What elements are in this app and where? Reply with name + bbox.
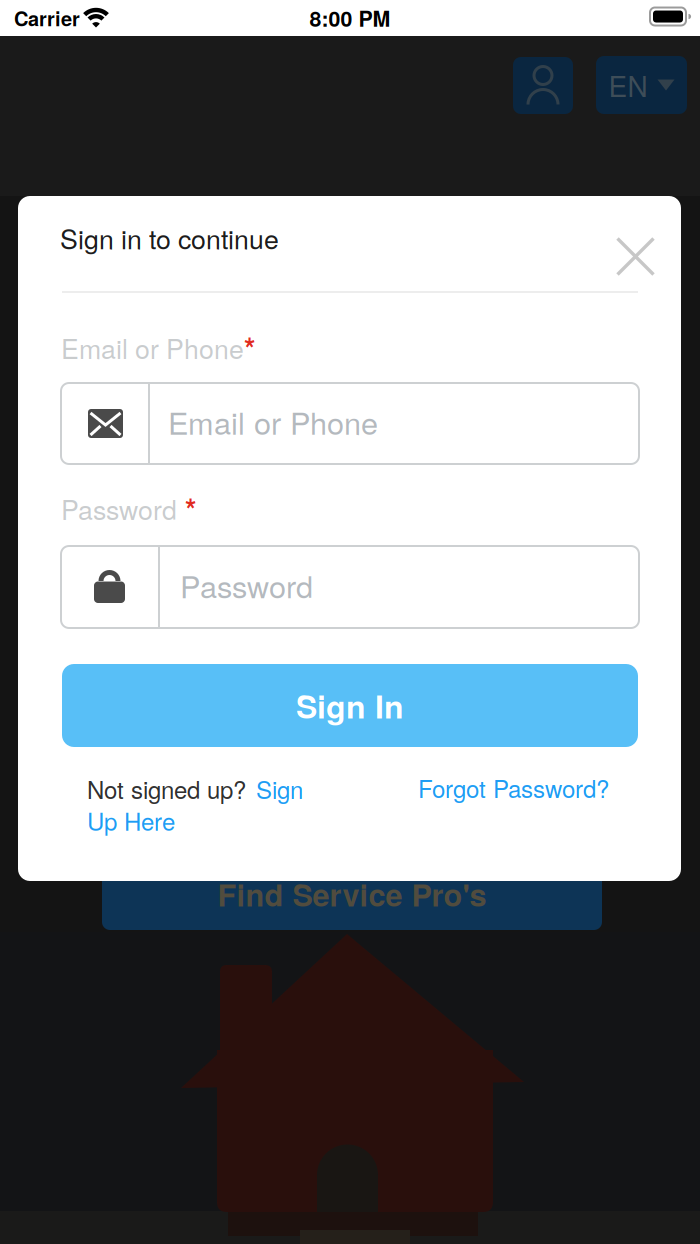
staticText: * <box>177 488 196 529</box>
staticText: * <box>244 327 255 368</box>
staticText: Forgot Password? <box>418 771 609 804</box>
staticText: Up Here <box>87 803 175 837</box>
button[interactable]: Language <box>596 56 687 114</box>
staticText: EN <box>608 65 647 105</box>
staticText: Sign In <box>296 683 404 728</box>
staticText: Not signed up? <box>87 772 246 805</box>
staticText: Email or Phone <box>61 329 244 366</box>
button[interactable]: Up Here <box>87 803 175 837</box>
staticText: Sign <box>256 772 303 805</box>
button[interactable]: Find Service Pro's <box>102 866 602 930</box>
staticText: 8:00 PM <box>309 3 390 33</box>
button[interactable]: Account <box>513 57 573 114</box>
staticText: Sign in to continue <box>60 219 279 256</box>
staticText: Password <box>180 564 313 606</box>
button[interactable]: Password <box>61 546 639 628</box>
button[interactable]: Close <box>617 238 654 275</box>
staticText: Email or Phone <box>168 400 378 443</box>
staticText: Password <box>61 490 177 527</box>
button[interactable]: Forgot Password? <box>418 771 609 804</box>
staticText: Find Service Pro's <box>217 873 486 915</box>
button[interactable]: Email or Phone <box>61 383 639 464</box>
staticText: Carrier <box>14 4 80 32</box>
button[interactable]: Sign <box>256 772 303 805</box>
button[interactable]: Sign In <box>62 664 638 747</box>
